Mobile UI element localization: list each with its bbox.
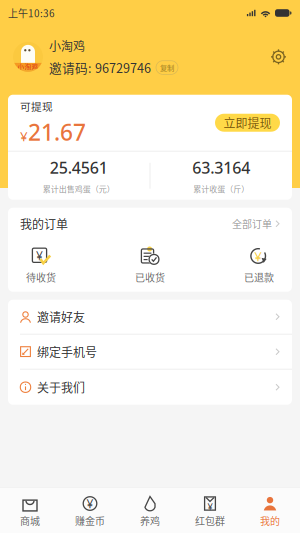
staticText: 商城 bbox=[20, 513, 40, 528]
button[interactable]: ¥ bbox=[180, 487, 240, 533]
staticText: ¥ bbox=[254, 247, 262, 265]
button[interactable]: 设置 bbox=[270, 48, 287, 65]
button[interactable]: 全部订单 bbox=[232, 216, 280, 231]
staticText: 25.4561 bbox=[50, 157, 108, 178]
staticText: 我的 bbox=[260, 513, 280, 528]
staticText: 上午10:36 bbox=[8, 6, 55, 20]
staticText: 复制 bbox=[160, 62, 174, 73]
staticText: 红包群 bbox=[195, 513, 225, 528]
staticText: 63.3164 bbox=[192, 157, 250, 178]
staticText: 绑定手机号 bbox=[37, 343, 97, 360]
button[interactable]: ¥ bbox=[19, 240, 63, 292]
button[interactable]: 立即提现 bbox=[215, 114, 280, 132]
button[interactable]: ¥ bbox=[237, 240, 281, 292]
staticText: 累计收蛋（斤） bbox=[193, 183, 249, 195]
staticText: 邀请码: 96729746 bbox=[49, 58, 151, 77]
button[interactable]: 商城 bbox=[0, 487, 60, 533]
staticText: 已收货 bbox=[135, 270, 165, 284]
button[interactable]: 复制 bbox=[156, 61, 178, 74]
staticText: 21.67 bbox=[28, 117, 86, 147]
button[interactable]: 已收货 bbox=[128, 240, 172, 292]
button[interactable]: 邀请好友 bbox=[8, 300, 292, 335]
button[interactable]: 关于我们 bbox=[8, 370, 292, 405]
staticText: ¥ bbox=[20, 127, 28, 145]
staticText: ¥ bbox=[36, 247, 43, 263]
button[interactable]: ¥ bbox=[60, 487, 120, 533]
staticText: 小淘鸡 bbox=[17, 62, 38, 71]
staticText: 立即提现 bbox=[223, 114, 271, 131]
staticText: 我的订单 bbox=[20, 215, 68, 232]
staticText: 已退款 bbox=[244, 270, 274, 284]
staticText: 邀请好友 bbox=[37, 308, 85, 325]
staticText: 全部订单 bbox=[232, 216, 272, 231]
staticText: 养鸡 bbox=[140, 513, 160, 528]
staticText: 赚金币 bbox=[75, 513, 105, 528]
button[interactable]: 我的 bbox=[240, 487, 300, 533]
staticText: ¥ bbox=[86, 496, 93, 511]
button[interactable]: 养鸡 bbox=[120, 487, 180, 533]
staticText: 关于我们 bbox=[37, 378, 85, 396]
staticText: ¥ bbox=[207, 500, 212, 513]
button[interactable]: 绑定手机号 bbox=[8, 335, 292, 370]
staticText: 小淘鸡 bbox=[49, 37, 85, 54]
staticText: 待收货 bbox=[26, 270, 56, 284]
staticText: 累计出售鸡蛋（元） bbox=[43, 183, 115, 195]
staticText: 可提现 bbox=[20, 98, 53, 114]
